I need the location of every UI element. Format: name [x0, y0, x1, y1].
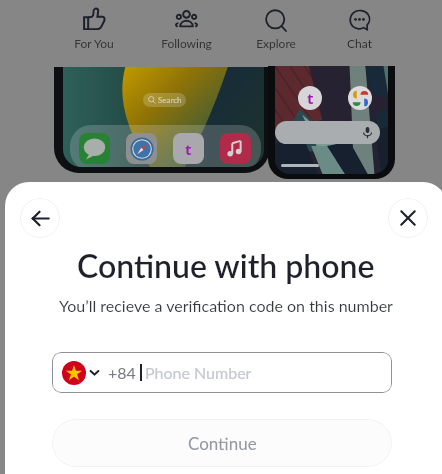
- button[interactable]: +84: [52, 352, 392, 393]
- staticText: You’ll recieve a verification code on th…: [59, 296, 393, 315]
- button[interactable]: Close: [388, 198, 428, 238]
- staticText: Continue: [188, 433, 257, 453]
- staticText: Chat: [347, 36, 372, 50]
- staticText: For You: [74, 36, 114, 50]
- staticText: +84: [108, 363, 136, 382]
- staticText: Explore: [256, 36, 296, 50]
- staticText: Continue with phone: [77, 246, 375, 284]
- button[interactable]: Chat: [319, 0, 399, 54]
- staticText: t: [307, 88, 314, 108]
- button[interactable]: Following: [146, 0, 226, 54]
- staticText: t: [185, 139, 192, 159]
- button[interactable]: For You: [54, 0, 134, 54]
- button[interactable]: Back: [20, 198, 60, 238]
- button[interactable]: Continue: [52, 419, 392, 467]
- staticText: Following: [161, 36, 212, 50]
- staticText: Search: [158, 95, 182, 105]
- staticText: Phone Number: [145, 363, 252, 382]
- button[interactable]: Explore: [236, 0, 316, 54]
